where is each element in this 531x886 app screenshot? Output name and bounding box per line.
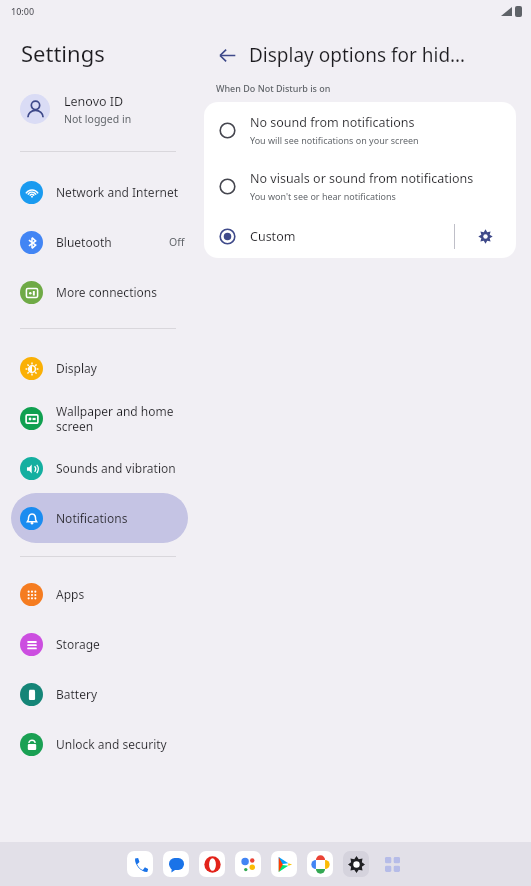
button[interactable]: Back [212, 40, 242, 70]
button[interactable]: Settings [343, 851, 369, 877]
staticText: Unlock and security [56, 736, 185, 752]
button[interactable]: No visuals or sound from notifications [204, 158, 516, 214]
button[interactable]: Sounds and vibration [0, 443, 199, 493]
staticText: Sounds and vibration [56, 460, 185, 476]
button[interactable]: Photos [307, 851, 333, 877]
staticText: Bluetooth [56, 234, 169, 250]
staticText: Custom [250, 228, 296, 245]
button[interactable]: All apps [379, 851, 405, 877]
staticText: 10:00 [11, 5, 35, 17]
button[interactable]: Unlock and security [0, 719, 199, 769]
staticText: When Do Not Disturb is on [216, 82, 331, 94]
staticText: No visuals or sound from notifications [250, 170, 474, 187]
staticText: Storage [56, 636, 185, 652]
button[interactable]: Custom [204, 214, 454, 258]
staticText: Wallpaper and home screen [56, 403, 185, 434]
staticText: Display [56, 360, 185, 376]
button[interactable]: Opera [199, 851, 225, 877]
button[interactable]: Apps [0, 569, 199, 619]
button[interactable]: More connections [0, 267, 199, 317]
button[interactable]: Storage [0, 619, 199, 669]
staticText: You will see notifications on your scree… [250, 134, 419, 146]
button[interactable]: Lenovo ID [0, 83, 199, 135]
staticText: Network and Internet [56, 184, 185, 200]
staticText: No sound from notifications [250, 114, 415, 131]
button[interactable]: Display [0, 343, 199, 393]
button[interactable]: Battery [0, 669, 199, 719]
button[interactable]: No sound from notifications [204, 102, 516, 158]
button[interactable]: Messages [163, 851, 189, 877]
button[interactable]: Play Store [271, 851, 297, 877]
staticText: Battery [56, 686, 185, 702]
staticText: Apps [56, 586, 185, 602]
staticText: More connections [56, 284, 185, 300]
staticText: Lenovo ID [64, 93, 124, 110]
staticText: Settings [21, 38, 105, 68]
staticText: Not logged in [64, 112, 132, 126]
staticText: You won't see or hear notifications [250, 190, 396, 202]
button[interactable]: Phone [127, 851, 153, 877]
button[interactable]: Custom Do Not Disturb settings [455, 214, 516, 258]
staticText: Off [169, 235, 185, 249]
button[interactable]: Wallpaper and home screen [0, 393, 199, 443]
button[interactable]: Notifications [11, 493, 188, 543]
button[interactable]: Google Assistant [235, 851, 261, 877]
staticText: Notifications [56, 510, 174, 526]
staticText: Display options for hid… [249, 42, 466, 68]
button[interactable]: Bluetooth [0, 217, 199, 267]
button[interactable]: Network and Internet [0, 167, 199, 217]
